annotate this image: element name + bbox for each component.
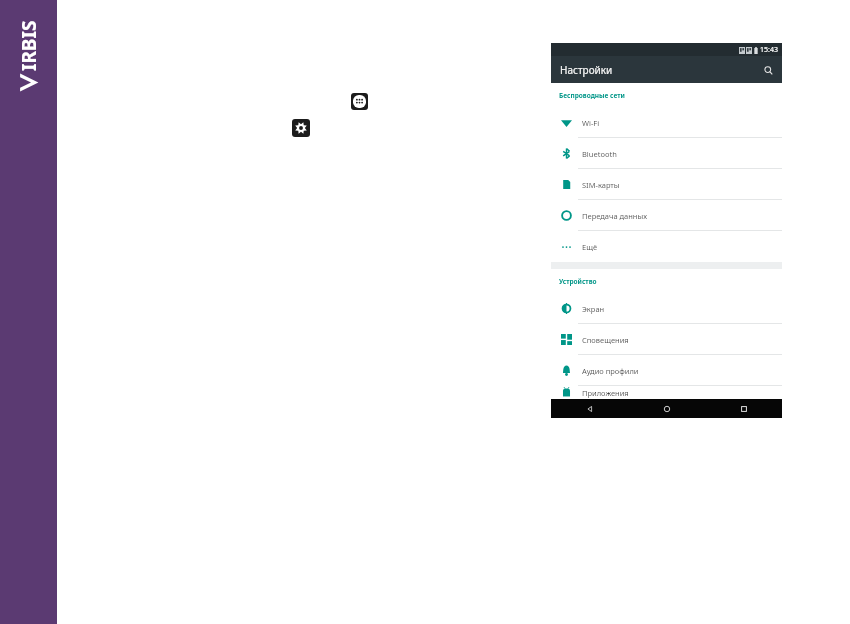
staticText: 15:43 (760, 45, 778, 55)
button[interactable]: SIM-карты (551, 169, 782, 200)
button[interactable]: Сповещения (551, 324, 782, 355)
button[interactable]: Приложения (551, 386, 782, 399)
staticText: Приложения (582, 388, 629, 398)
staticText: Экран (582, 304, 605, 314)
button[interactable]: Передача данных (551, 200, 782, 231)
button[interactable]: Ещё (551, 231, 782, 262)
button[interactable]: Wi-Fi (551, 107, 782, 138)
button[interactable]: Back (551, 399, 628, 418)
staticText: Ещё (582, 242, 598, 252)
button[interactable]: Recents (705, 399, 782, 418)
staticText: Передача данных (582, 211, 647, 221)
button[interactable]: Экран (551, 293, 782, 324)
staticText: Сповещения (582, 335, 629, 345)
staticText: Аудио профили (582, 366, 639, 376)
staticText: Wi-Fi (582, 118, 600, 128)
button[interactable]: Аудио профили (551, 355, 782, 386)
button[interactable]: Settings (292, 119, 310, 137)
button[interactable]: Home (628, 399, 705, 418)
button[interactable]: Search (759, 61, 777, 79)
staticText: Bluetooth (582, 149, 617, 159)
staticText: IRBIS (16, 20, 42, 71)
staticText: Беспроводные сети (559, 91, 625, 100)
staticText: SIM-карты (582, 180, 620, 190)
staticText: Настройки (560, 63, 613, 77)
button[interactable]: All apps (351, 93, 368, 110)
staticText: Устройство (559, 277, 597, 286)
button[interactable]: Bluetooth (551, 138, 782, 169)
